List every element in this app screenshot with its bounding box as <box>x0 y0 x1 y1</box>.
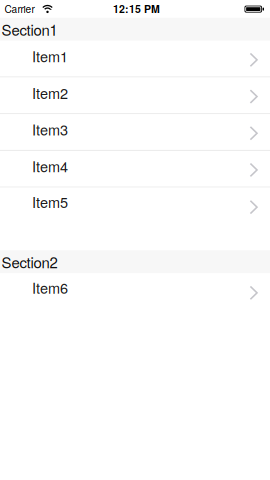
staticText: Item1 <box>32 45 68 66</box>
button[interactable]: Item3 <box>0 114 270 151</box>
staticText: Section2 <box>1 251 57 272</box>
staticText: Item5 <box>32 191 68 212</box>
button[interactable]: Item5 <box>0 188 270 224</box>
staticText: Carrier <box>4 1 34 16</box>
button[interactable]: Item1 <box>0 41 270 77</box>
button[interactable]: Item2 <box>0 77 270 114</box>
staticText: Item4 <box>32 156 68 176</box>
staticText: 12:15 PM <box>113 1 160 16</box>
button[interactable]: Item6 <box>0 273 270 310</box>
staticText: Item3 <box>32 119 68 140</box>
staticText: Section1 <box>1 19 57 40</box>
staticText: Item6 <box>32 277 68 298</box>
button[interactable]: Item4 <box>0 151 270 188</box>
staticText: Item2 <box>32 82 68 103</box>
